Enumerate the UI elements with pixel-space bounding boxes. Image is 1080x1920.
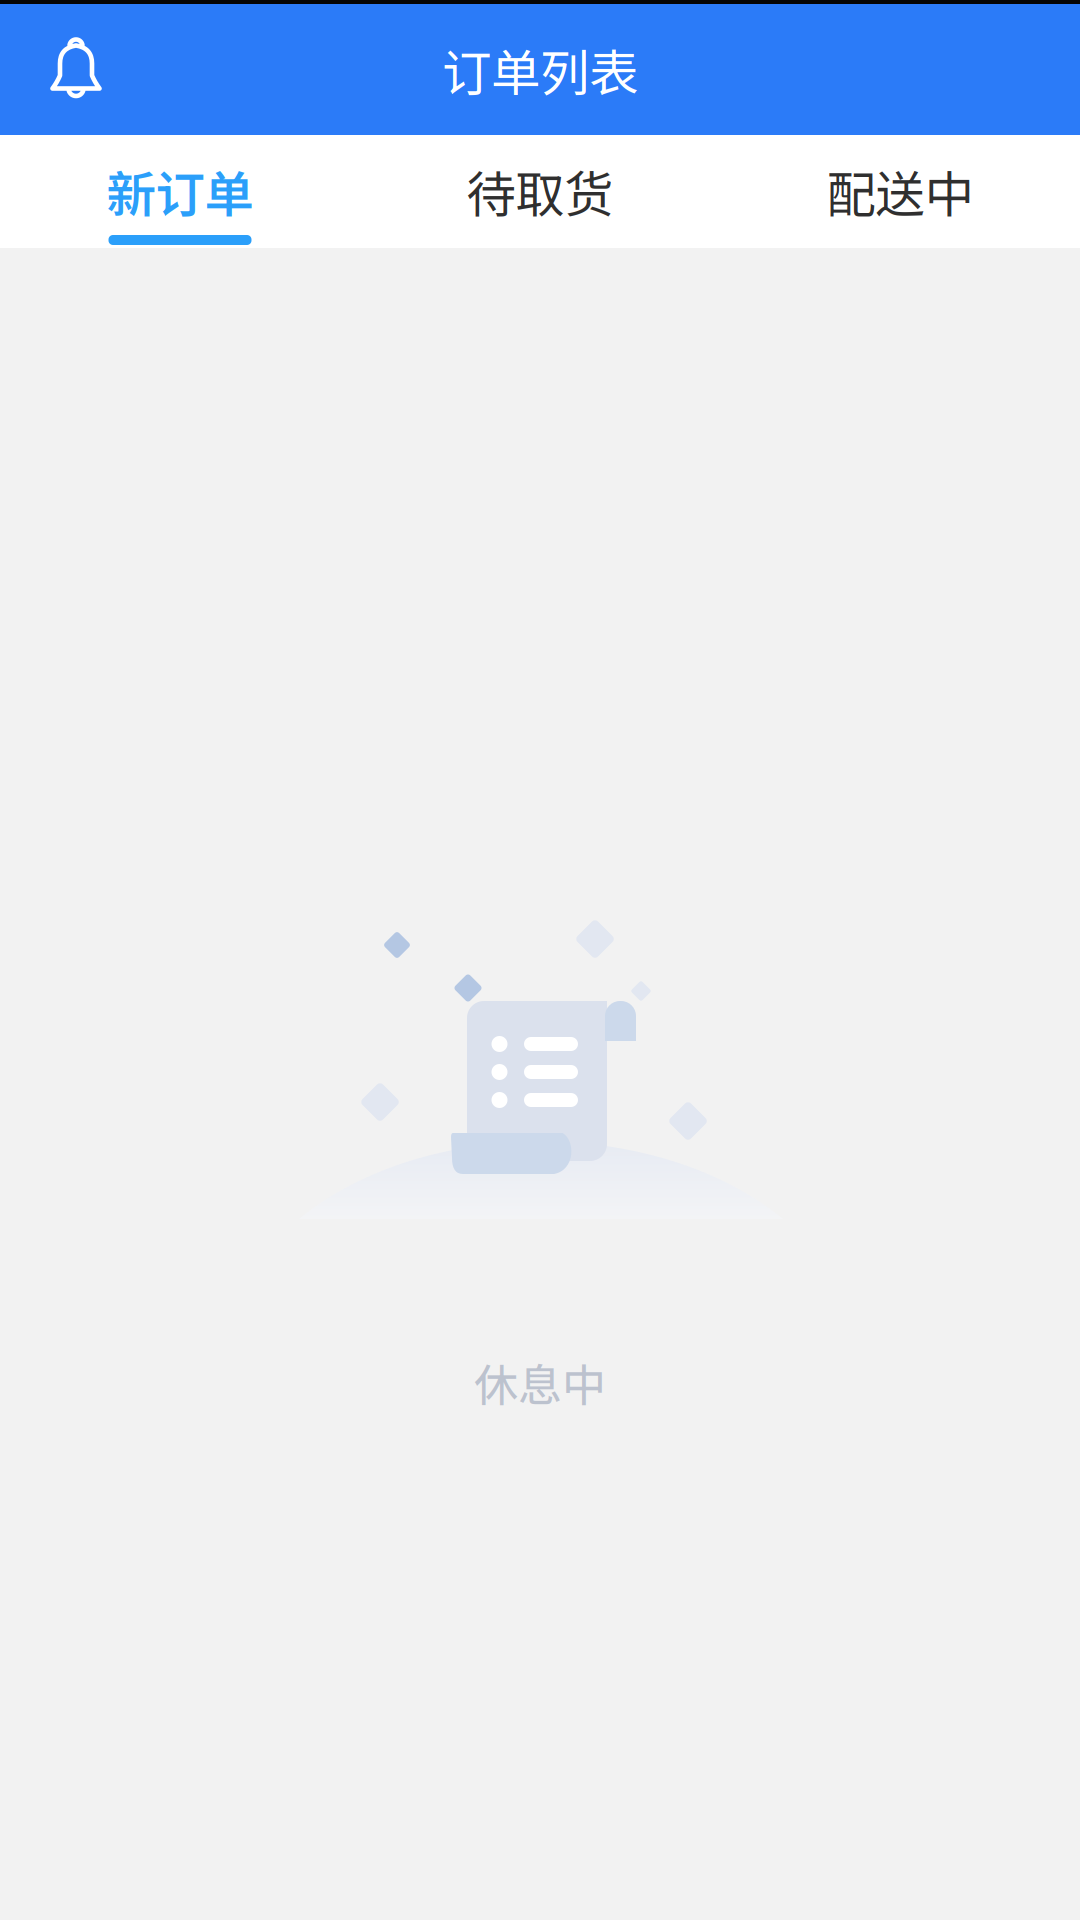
staticText: 新订单 — [106, 155, 253, 227]
button[interactable]: Notifications — [10, 0, 142, 135]
button[interactable]: 配送中 — [720, 135, 1080, 248]
button[interactable]: 待取货 — [360, 135, 720, 248]
staticText: 订单列表 — [442, 34, 638, 105]
staticText: 休息中 — [474, 1350, 606, 1414]
staticText: 配送中 — [826, 155, 973, 227]
button[interactable]: 新订单 — [0, 135, 360, 248]
staticText: 待取货 — [466, 155, 613, 227]
